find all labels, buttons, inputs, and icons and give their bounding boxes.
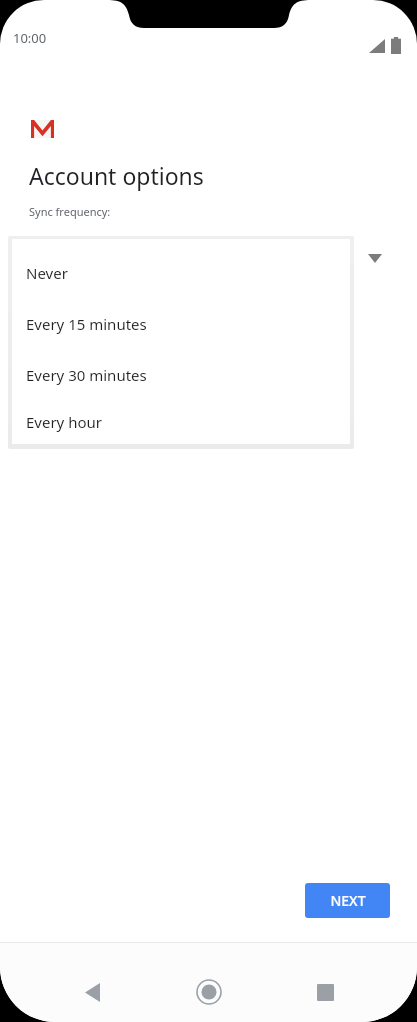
button[interactable]: Back	[68, 968, 116, 1016]
button[interactable]: Never	[12, 247, 350, 298]
button[interactable]: Every 15 minutes	[12, 298, 350, 349]
staticText: Every hour	[26, 412, 102, 432]
staticText: Never	[26, 263, 68, 283]
staticText: Every 30 minutes	[26, 365, 147, 385]
button[interactable]: Download attachments when connected to W…	[30, 277, 393, 324]
button[interactable]: Recent apps	[301, 968, 349, 1016]
staticText: 10:00	[13, 29, 47, 47]
button[interactable]: Every hour	[0, 233, 417, 277]
staticText: Download attachments when connected to W…	[72, 277, 241, 324]
staticText: NEXT	[330, 891, 366, 910]
staticText: Account options	[29, 160, 204, 191]
staticText: Every 15 minutes	[26, 314, 147, 334]
button[interactable]: Home	[185, 968, 233, 1016]
button[interactable]: NEXT	[305, 883, 390, 918]
button[interactable]: Every hour	[12, 400, 350, 444]
button[interactable]: Every 30 minutes	[12, 349, 350, 400]
staticText: Sync frequency:	[29, 204, 111, 219]
